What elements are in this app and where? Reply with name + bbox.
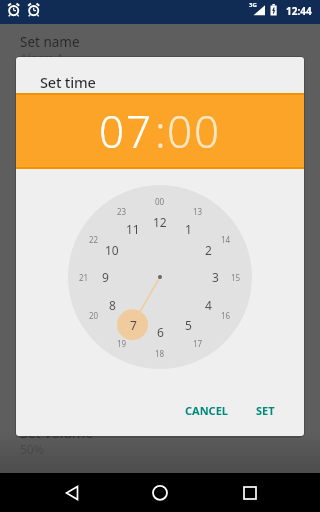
staticText: 19 [117, 338, 127, 349]
staticText: 23 [117, 206, 127, 217]
staticText: 10 [105, 242, 119, 258]
staticText: 3 [212, 269, 219, 285]
button[interactable] [136, 473, 184, 512]
staticText: Set time [40, 72, 96, 92]
staticText: 5 [185, 317, 192, 333]
staticText: 18 [155, 348, 165, 359]
staticText: 21 [79, 272, 89, 283]
staticText: 8 [109, 297, 116, 313]
staticText: 17 [193, 338, 203, 349]
staticText: 7 [130, 317, 137, 333]
staticText: CANCEL [185, 403, 228, 418]
staticText: 12 [153, 214, 167, 230]
staticText: SET [256, 403, 275, 418]
staticText: 13 [193, 206, 203, 217]
staticText: 4 [205, 297, 212, 313]
button[interactable] [48, 473, 96, 512]
staticText: 14 [221, 234, 231, 245]
staticText: 1 [185, 221, 192, 237]
button[interactable]: 07 [99, 101, 154, 161]
button[interactable]: 00 [167, 101, 222, 161]
staticText: 3G [249, 1, 257, 9]
button[interactable] [226, 473, 274, 512]
staticText: 22 [89, 234, 99, 245]
staticText: Alarm 1 [20, 50, 64, 66]
staticText: 2 [205, 242, 212, 258]
staticText: 11 [126, 221, 140, 237]
staticText: 9 [102, 269, 109, 285]
staticText: Set volume [20, 423, 94, 442]
button[interactable]: CANCEL [177, 393, 236, 428]
staticText: 20 [89, 310, 99, 321]
staticText: Set name [20, 33, 80, 51]
staticText: 00 [155, 196, 165, 207]
staticText: 50% [20, 441, 44, 457]
button[interactable]: SET [240, 393, 290, 428]
staticText: : [155, 101, 166, 161]
staticText: 15 [231, 272, 241, 283]
staticText: 6 [157, 324, 164, 340]
staticText: 16 [221, 310, 231, 321]
staticText: 12:44 [286, 4, 312, 18]
